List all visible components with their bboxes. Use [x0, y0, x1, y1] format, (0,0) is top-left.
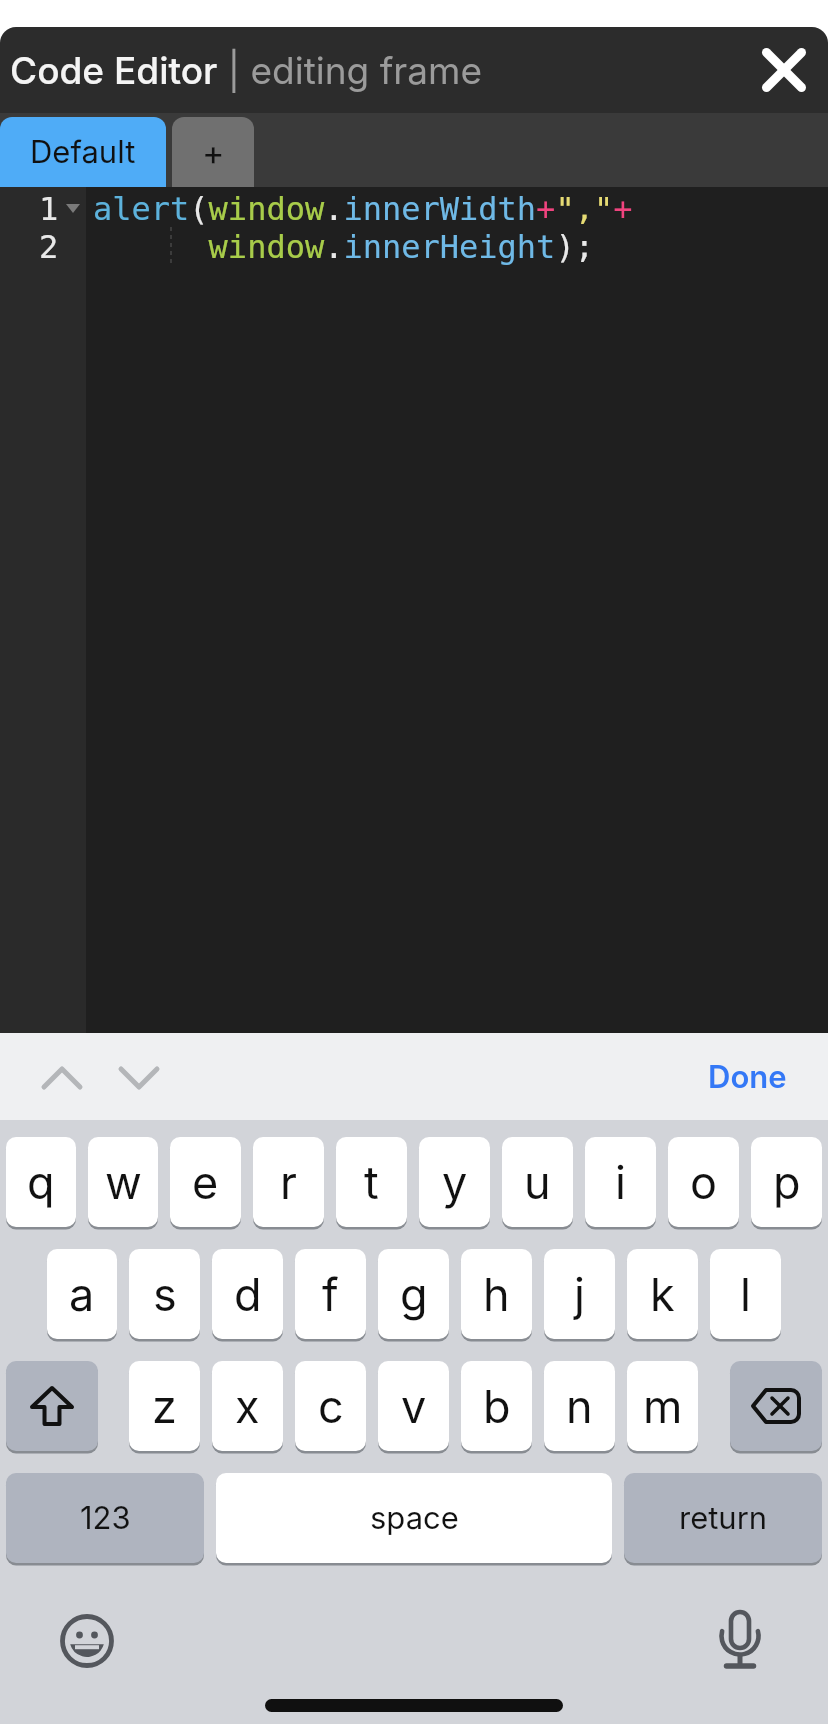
button[interactable]: + — [172, 117, 254, 187]
button[interactable]: p — [751, 1137, 822, 1227]
button[interactable]: Done — [708, 1058, 787, 1096]
staticText: o — [690, 1155, 717, 1209]
button[interactable]: a — [47, 1249, 117, 1339]
button[interactable]: n — [544, 1361, 615, 1451]
staticText: return — [679, 1499, 768, 1537]
button[interactable] — [6, 1361, 98, 1451]
button[interactable]: space — [216, 1473, 612, 1563]
button[interactable]: v — [378, 1361, 449, 1451]
staticText: alert(window.innerWidth+","+ — [93, 190, 633, 227]
staticText: b — [483, 1379, 511, 1433]
button[interactable]: x — [212, 1361, 283, 1451]
button[interactable]: f — [295, 1249, 366, 1339]
staticText: u — [524, 1155, 551, 1209]
staticText: c — [318, 1379, 344, 1433]
button[interactable]: d — [212, 1249, 283, 1339]
button[interactable]: m — [627, 1361, 698, 1451]
staticText: Code Editor | editing frame — [10, 48, 483, 93]
staticText: Done — [708, 1058, 787, 1096]
button[interactable]: z — [129, 1361, 200, 1451]
staticText: h — [483, 1267, 510, 1321]
staticText: g — [400, 1267, 428, 1321]
button[interactable] — [762, 48, 806, 92]
staticText: r — [280, 1155, 297, 1209]
staticText: a — [69, 1267, 95, 1321]
staticText: m — [643, 1379, 683, 1433]
button[interactable]: t — [336, 1137, 407, 1227]
button[interactable]: j — [544, 1249, 615, 1339]
staticText: p — [773, 1155, 801, 1209]
button[interactable] — [730, 1361, 822, 1451]
staticText: e — [192, 1155, 219, 1209]
staticText: + — [202, 132, 225, 173]
staticText: s — [153, 1267, 177, 1321]
button[interactable]: Default — [0, 117, 166, 187]
button[interactable] — [60, 1614, 114, 1668]
staticText: i — [615, 1155, 626, 1209]
staticText: v — [401, 1379, 427, 1433]
button[interactable]: s — [129, 1249, 200, 1339]
staticText: space — [370, 1499, 459, 1537]
button[interactable]: b — [461, 1361, 532, 1451]
button[interactable]: r — [253, 1137, 324, 1227]
staticText: d — [234, 1267, 262, 1321]
staticText: y — [442, 1155, 468, 1209]
staticText: t — [364, 1155, 379, 1209]
staticText: f — [322, 1267, 339, 1321]
button[interactable]: return — [624, 1473, 822, 1563]
button[interactable]: u — [502, 1137, 573, 1227]
button[interactable]: 123 — [6, 1473, 204, 1563]
staticText: 123 — [80, 1499, 131, 1537]
button[interactable]: h — [461, 1249, 532, 1339]
staticText: k — [650, 1267, 675, 1321]
button[interactable]: w — [88, 1137, 158, 1227]
staticText: 2 — [39, 228, 59, 265]
button[interactable]: o — [668, 1137, 739, 1227]
button[interactable]: g — [378, 1249, 449, 1339]
staticText: q — [27, 1155, 55, 1209]
button[interactable]: e — [170, 1137, 241, 1227]
staticText: x — [235, 1379, 260, 1433]
staticText: j — [574, 1267, 585, 1321]
staticText: w — [105, 1155, 142, 1209]
button[interactable]: i — [585, 1137, 656, 1227]
staticText: l — [740, 1267, 751, 1321]
staticText: window.innerHeight); — [93, 228, 594, 265]
staticText: Default — [30, 133, 136, 171]
button[interactable]: q — [6, 1137, 76, 1227]
button[interactable]: y — [419, 1137, 490, 1227]
staticText: z — [152, 1379, 177, 1433]
staticText: n — [566, 1379, 593, 1433]
button[interactable]: c — [295, 1361, 366, 1451]
button[interactable]: k — [627, 1249, 698, 1339]
button[interactable] — [716, 1610, 764, 1674]
button[interactable]: l — [710, 1249, 781, 1339]
staticText: 1 — [39, 190, 59, 227]
